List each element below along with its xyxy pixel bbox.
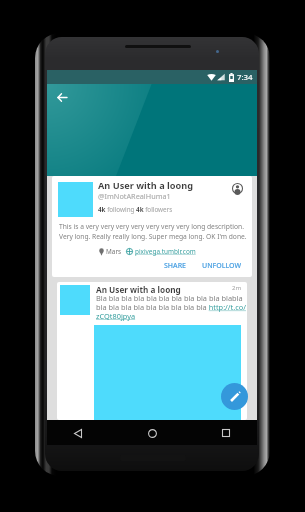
staticText: 7:34 <box>237 72 253 83</box>
button[interactable]: UNFOLLOW <box>198 258 246 274</box>
button[interactable]: An User with a loong <box>52 176 252 277</box>
staticText: @ImNotARealHuma1 <box>98 191 171 201</box>
staticText: Mars <box>106 247 122 256</box>
staticText: An User with a loong <box>98 179 194 192</box>
button[interactable]: An User with a loong <box>57 282 247 420</box>
button[interactable]: Recent apps <box>215 422 237 444</box>
staticText: 2m <box>232 284 242 292</box>
staticText: An User with a loong <box>96 284 181 295</box>
button[interactable]: Home <box>141 422 163 444</box>
staticText: UNFOLLOW <box>202 261 242 271</box>
staticText: pixivega.tumblr.com <box>135 247 196 256</box>
staticText: SHARE <box>164 261 186 271</box>
button[interactable]: Account <box>230 181 245 196</box>
staticText: Bla bla bla bla bla bla bla bla bla bla … <box>96 293 247 321</box>
staticText: This is a very very very very very very … <box>59 222 249 241</box>
button[interactable]: Back <box>49 85 74 110</box>
button[interactable]: Compose new tweet <box>221 383 248 410</box>
staticText: 4k following 4k followers <box>98 205 173 214</box>
button[interactable]: SHARE <box>160 258 190 274</box>
button[interactable]: Back <box>67 422 89 444</box>
